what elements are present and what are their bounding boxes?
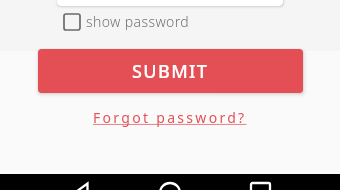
button[interactable]: Forgot password?: [85, 103, 255, 132]
button[interactable]: Home: [159, 182, 181, 190]
button[interactable]: Recent apps: [250, 182, 272, 190]
staticText: Forgot password?: [93, 108, 247, 127]
staticText: SUBMIT: [132, 59, 209, 84]
button[interactable]: SUBMIT: [38, 49, 303, 93]
button[interactable]: Back: [73, 182, 95, 190]
staticText: show password: [86, 12, 190, 31]
button[interactable]: show password: [61, 10, 192, 33]
